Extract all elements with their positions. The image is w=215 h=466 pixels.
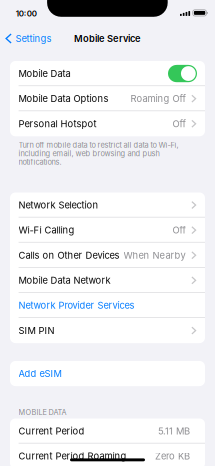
staticText: Off [172, 224, 185, 236]
staticText: Off [172, 118, 185, 129]
staticText: 10:00 [16, 9, 37, 18]
staticText: Personal Hotspot [19, 118, 97, 129]
button[interactable]: Personal Hotspot [10, 111, 205, 136]
button[interactable]: Add eSIM [10, 361, 205, 386]
button[interactable]: Wi-Fi Calling [10, 218, 205, 243]
staticText: Network Provider Services [19, 300, 135, 311]
staticText: Mobile Data Network [19, 275, 111, 286]
staticText: Current Period Roaming [19, 450, 127, 462]
staticText: MOBILE DATA [19, 408, 67, 417]
button[interactable]: Mobile Data Network [10, 268, 205, 293]
staticText: Mobile Data Options [19, 93, 109, 104]
staticText: Wi-Fi Calling [19, 224, 75, 236]
staticText: Settings [15, 33, 51, 44]
staticText: SIM PIN [19, 325, 55, 336]
staticText: 5.11 MB [158, 425, 190, 437]
staticText: Mobile Service [74, 33, 141, 44]
staticText: Current Period [19, 425, 85, 437]
staticText: Calls on Other Devices [19, 250, 120, 261]
button[interactable]: SIM PIN [10, 318, 205, 343]
button[interactable]: Network Provider Services [10, 293, 205, 318]
button[interactable]: Mobile Data Options [10, 86, 205, 111]
button[interactable]: Settings [0, 27, 55, 49]
staticText: Roaming Off [130, 93, 185, 104]
staticText: Network Selection [19, 199, 99, 211]
button[interactable]: Current Period Roaming [10, 444, 205, 466]
staticText: Mobile Data [19, 68, 71, 79]
button[interactable]: Current Period [10, 418, 205, 444]
button[interactable]: Calls on Other Devices [10, 243, 205, 268]
button[interactable]: Network Selection [10, 192, 205, 218]
staticText: Turn off mobile data to restrict all dat… [19, 140, 179, 167]
staticText: Zero KB [155, 450, 190, 462]
staticText: Add eSIM [19, 368, 62, 379]
staticText: When Nearby [123, 250, 185, 261]
button[interactable]: Mobile Data [168, 65, 197, 82]
